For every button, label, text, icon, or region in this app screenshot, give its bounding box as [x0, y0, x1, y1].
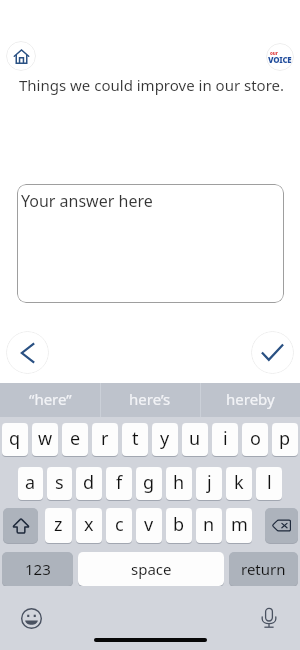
- staticText: j: [207, 470, 212, 495]
- staticText: “here”: [29, 389, 72, 409]
- staticText: b: [173, 512, 185, 537]
- button[interactable]: f: [106, 467, 132, 500]
- button[interactable]: return: [229, 552, 298, 586]
- button[interactable]: Your answer here: [17, 184, 284, 303]
- button[interactable]: z: [45, 508, 72, 543]
- staticText: y: [160, 426, 170, 451]
- staticText: s: [55, 470, 64, 495]
- staticText: e: [70, 426, 81, 451]
- button[interactable]: Back: [6, 331, 49, 374]
- button[interactable]: n: [196, 508, 222, 543]
- button[interactable]: j: [196, 467, 222, 500]
- button[interactable]: d: [76, 467, 102, 500]
- staticText: g: [143, 470, 155, 495]
- staticText: a: [25, 470, 36, 495]
- button[interactable]: p: [272, 423, 298, 456]
- button[interactable]: v: [136, 508, 162, 543]
- staticText: here’s: [129, 389, 171, 409]
- button[interactable]: hereby: [200, 383, 300, 417]
- button[interactable]: e: [62, 423, 88, 456]
- staticText: z: [54, 512, 63, 537]
- staticText: i: [223, 426, 228, 451]
- staticText: p: [279, 426, 291, 451]
- staticText: space: [131, 559, 172, 579]
- staticText: c: [115, 512, 124, 537]
- staticText: x: [84, 512, 94, 537]
- button[interactable]: y: [152, 423, 178, 456]
- button[interactable]: l: [256, 467, 282, 500]
- staticText: h: [173, 470, 185, 495]
- button[interactable]: w: [32, 423, 58, 456]
- button[interactable]: m: [226, 508, 252, 543]
- button[interactable]: g: [136, 467, 162, 500]
- button[interactable]: r: [92, 423, 118, 456]
- staticText: v: [144, 512, 154, 537]
- staticText: return: [241, 559, 286, 579]
- staticText: m: [231, 512, 248, 537]
- button[interactable]: Dictation: [255, 604, 283, 632]
- staticText: o: [250, 426, 261, 451]
- staticText: t: [132, 426, 139, 451]
- staticText: w: [38, 426, 53, 451]
- button[interactable]: i: [212, 423, 238, 456]
- button[interactable]: our Voice logo: [266, 43, 294, 71]
- button[interactable]: Shift: [3, 508, 38, 543]
- button[interactable]: h: [166, 467, 192, 500]
- staticText: VOICE: [268, 54, 292, 65]
- button[interactable]: o: [242, 423, 268, 456]
- staticText: u: [189, 426, 201, 451]
- staticText: k: [234, 470, 244, 495]
- staticText: l: [267, 470, 272, 495]
- button[interactable]: t: [122, 423, 148, 456]
- staticText: f: [116, 470, 123, 495]
- staticText: n: [203, 512, 215, 537]
- button[interactable]: 123: [2, 552, 73, 586]
- staticText: q: [9, 426, 21, 451]
- button[interactable]: c: [106, 508, 132, 543]
- button[interactable]: Home: [6, 41, 36, 71]
- button[interactable]: “here”: [0, 383, 100, 417]
- staticText: r: [101, 426, 109, 451]
- button[interactable]: b: [166, 508, 192, 543]
- button[interactable]: a: [18, 467, 43, 500]
- button[interactable]: x: [76, 508, 102, 543]
- staticText: d: [83, 470, 95, 495]
- button[interactable]: here’s: [100, 383, 200, 417]
- button[interactable]: u: [182, 423, 208, 456]
- button[interactable]: Emoji: [17, 604, 45, 632]
- staticText: hereby: [226, 389, 275, 409]
- staticText: Your answer here: [21, 190, 153, 212]
- staticText: our: [270, 50, 278, 56]
- button[interactable]: Backspace: [265, 508, 298, 543]
- button[interactable]: Submit: [251, 331, 294, 374]
- staticText: 123: [25, 559, 51, 579]
- staticText: Things we could improve in our store.: [19, 75, 285, 95]
- button[interactable]: q: [2, 423, 28, 456]
- button[interactable]: s: [47, 467, 72, 500]
- button[interactable]: k: [226, 467, 252, 500]
- button[interactable]: space: [78, 552, 224, 586]
